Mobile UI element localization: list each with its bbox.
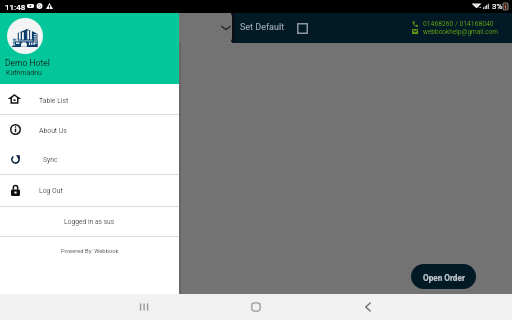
staticText: 01468260 / 014168040 [423,20,494,28]
button[interactable]: Open Order [411,264,476,289]
button[interactable]: Table List [0,84,179,114]
staticText: Powered By: Webbook [61,248,119,255]
button[interactable]: Sync [0,145,179,174]
button[interactable]: Back [348,294,388,320]
staticText: Sync [43,156,58,164]
button[interactable]: Set Default [240,13,308,43]
button[interactable]: Logged in as sus [0,207,179,236]
staticText: Open Order [423,273,465,283]
staticText: webbookhelp@gmail.com [423,28,499,36]
staticText: Demo Hotel [5,58,50,68]
button[interactable]: Log Out [0,175,179,206]
button[interactable]: Select table [150,13,232,42]
staticText: Logged in as sus [64,218,115,226]
staticText: Table List [39,97,69,105]
button[interactable]: Home [236,294,276,320]
staticText: Set Default [240,22,285,33]
staticText: 3% [492,2,503,11]
staticText: 11:48 [5,3,26,12]
button[interactable]: Recent apps [124,294,164,320]
staticText: About Us [39,127,67,135]
staticText: Kathmadnu [6,69,42,77]
staticText: Log Out [39,187,63,195]
button[interactable]: About Us [0,115,179,144]
